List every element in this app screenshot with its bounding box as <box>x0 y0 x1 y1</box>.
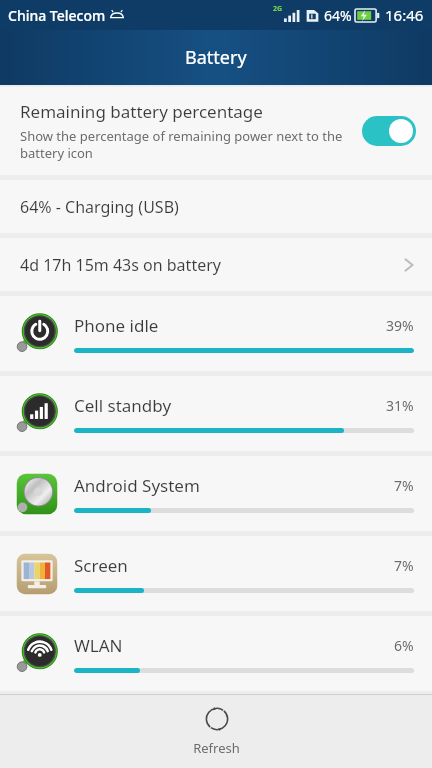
staticText: 39% <box>386 316 414 335</box>
button[interactable]: Screen <box>0 536 432 611</box>
staticText: Phone idle <box>74 314 386 337</box>
staticText: Android System <box>74 474 394 497</box>
staticText: 16:46 <box>385 5 424 25</box>
button[interactable] <box>362 116 416 146</box>
button[interactable]: Refresh <box>163 695 270 768</box>
staticText: Screen <box>74 554 394 577</box>
staticText: 7% <box>394 476 414 495</box>
staticText: Cell standby <box>74 394 386 417</box>
staticText: WLAN <box>74 634 394 657</box>
staticText: 31% <box>386 396 414 415</box>
button[interactable]: 4d 17h 15m 43s on battery <box>0 238 432 291</box>
button[interactable]: 64% - Charging (USB) <box>0 180 432 233</box>
button[interactable]: Phone idle <box>0 296 432 371</box>
staticText: Remaining battery percentage <box>20 100 263 123</box>
staticText: 7% <box>394 556 414 575</box>
staticText: 4d 17h 15m 43s on battery <box>20 254 402 276</box>
button[interactable]: Cell standby <box>0 376 432 451</box>
button[interactable]: WLAN <box>0 616 432 691</box>
staticText: 6% <box>394 636 414 655</box>
staticText: Refresh <box>193 739 240 757</box>
staticText: Battery <box>185 45 247 70</box>
staticText: Show the percentage of remaining power n… <box>20 127 350 162</box>
staticText: China Telecom <box>8 6 106 25</box>
staticText: 64% - Charging (USB) <box>20 196 416 218</box>
staticText: 64% <box>324 6 352 25</box>
button[interactable]: Android System <box>0 456 432 531</box>
button[interactable]: Remaining battery percentage <box>0 87 432 175</box>
staticText: 2G <box>273 4 283 14</box>
